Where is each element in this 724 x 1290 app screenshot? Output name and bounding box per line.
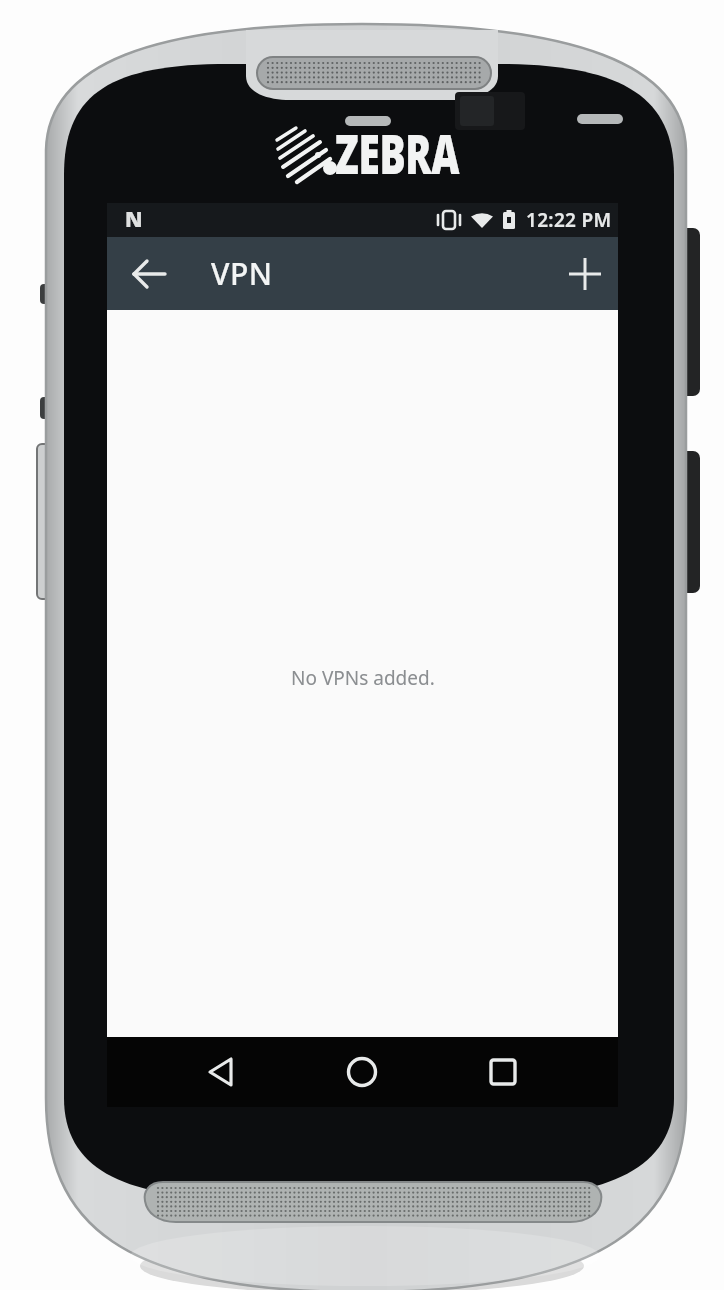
- staticText: No VPNs added.: [291, 665, 435, 691]
- staticText: 12:22 PM: [526, 207, 612, 233]
- staticText: N: [125, 205, 143, 234]
- staticText: ZEBRA: [335, 116, 460, 190]
- button[interactable]: [334, 1044, 390, 1100]
- button[interactable]: [194, 1044, 250, 1100]
- button[interactable]: [107, 237, 165, 310]
- button[interactable]: [550, 237, 618, 310]
- staticText: VPN: [211, 253, 273, 294]
- button[interactable]: [475, 1044, 531, 1100]
